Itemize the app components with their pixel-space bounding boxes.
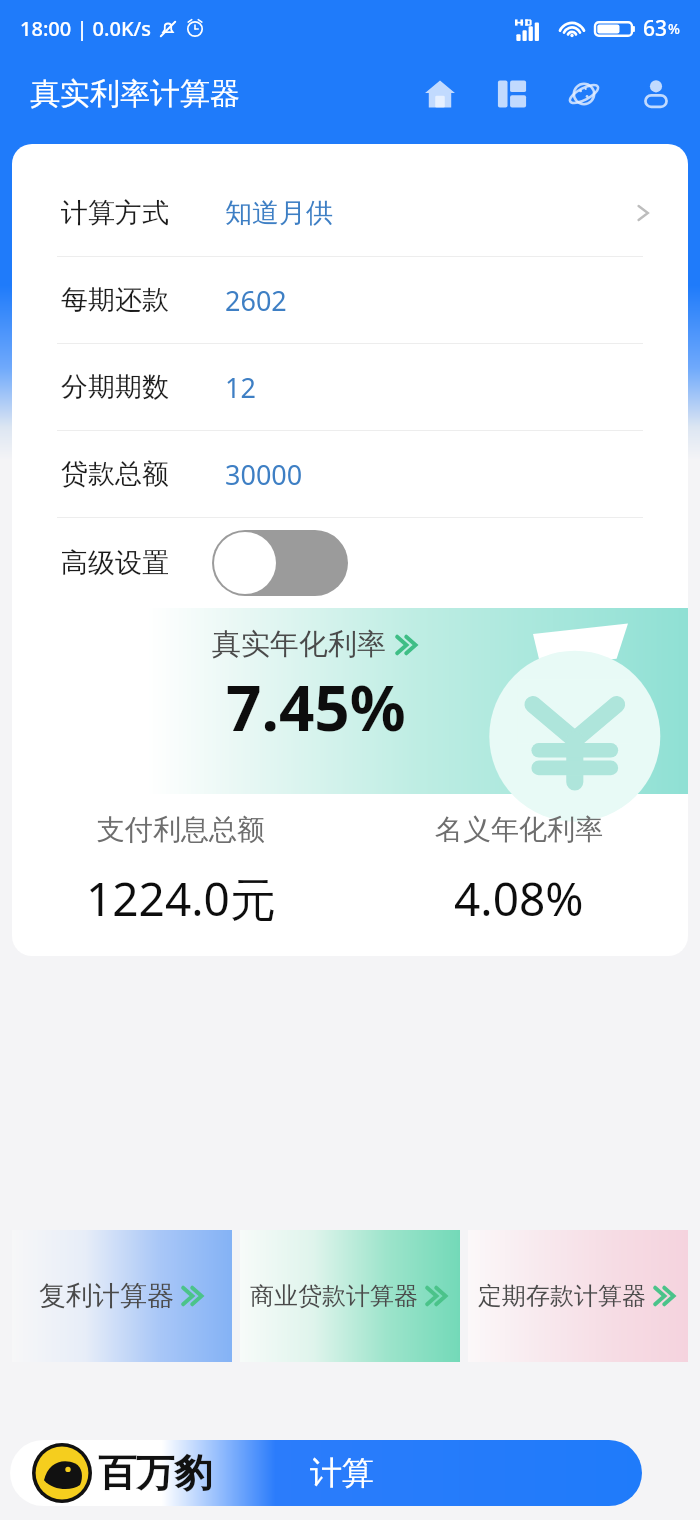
staticText: 贷款总额 — [61, 457, 169, 491]
button[interactable]: 计算方式 — [12, 170, 688, 256]
staticText: 18:00 | 0.0K/s — [20, 15, 151, 42]
button[interactable]: 计算 — [10, 1440, 642, 1506]
button[interactable]: 商业贷款计算器 — [240, 1230, 460, 1362]
button[interactable]: 每期还款 — [12, 257, 688, 343]
staticText: 百万豹 — [98, 1449, 212, 1497]
staticText: 真实年化利率 — [212, 626, 386, 663]
staticText: 4.08% — [454, 867, 584, 930]
staticText: 高级设置 — [61, 546, 169, 580]
staticText: 每期还款 — [61, 283, 169, 317]
staticText: % — [668, 19, 680, 38]
button[interactable]: 定期存款计算器 — [468, 1230, 688, 1362]
button[interactable]: Home — [418, 72, 462, 116]
staticText: 计算 — [310, 1453, 374, 1493]
button[interactable]: Layout — [490, 72, 534, 116]
staticText: 1224.0元 — [86, 867, 276, 930]
button[interactable]: Discover — [562, 72, 606, 116]
staticText: 商业贷款计算器 — [250, 1281, 418, 1311]
staticText: 2602 — [225, 282, 287, 319]
staticText: 复利计算器 — [39, 1279, 174, 1313]
button[interactable]: 贷款总额 — [12, 431, 688, 517]
other: 高级设置 toggle — [212, 530, 348, 596]
staticText: 支付利息总额 — [97, 812, 265, 847]
staticText: 分期期数 — [61, 370, 169, 404]
button[interactable]: 分期期数 — [12, 344, 688, 430]
button[interactable]: 支付利息总额 — [12, 812, 350, 930]
staticText: 真实利率计算器 — [30, 75, 240, 113]
staticText: 知道月供 — [225, 196, 333, 230]
staticText: 7.45% — [226, 665, 406, 749]
button[interactable]: 复利计算器 — [12, 1230, 232, 1362]
staticText: 63 — [643, 14, 668, 43]
staticText: 计算方式 — [61, 196, 169, 230]
button[interactable]: 高级设置 — [12, 518, 688, 608]
staticText: 名义年化利率 — [435, 812, 603, 847]
staticText: 定期存款计算器 — [478, 1281, 646, 1311]
button[interactable]: Profile — [634, 72, 678, 116]
button[interactable]: 名义年化利率 — [350, 812, 688, 930]
staticText: 12 — [225, 369, 256, 406]
staticText: 30000 — [225, 456, 303, 493]
